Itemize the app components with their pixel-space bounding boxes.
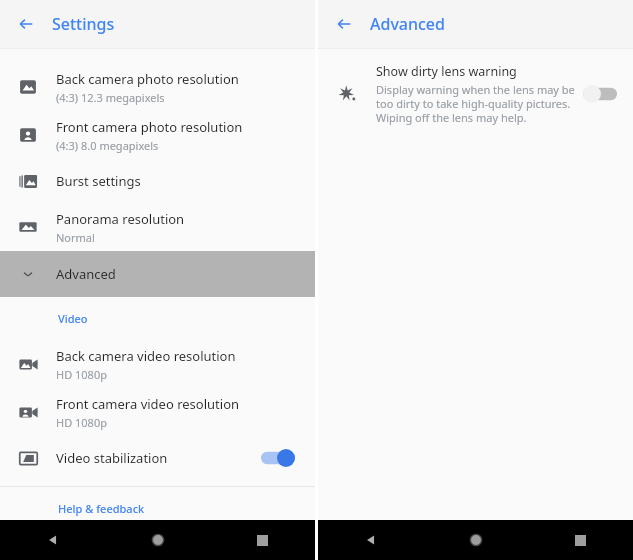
button[interactable]: Show dirty lens warning toggle [583,84,617,104]
staticText: Display warning when the lens may be too… [376,82,577,125]
button[interactable]: Show dirty lens warning [318,57,633,131]
button[interactable]: Advanced [0,251,315,297]
button[interactable]: Back [318,520,423,560]
staticText: Video [58,311,88,326]
button[interactable]: Burst settings [0,159,315,203]
button[interactable]: Front camera video resolution [0,388,315,436]
button[interactable]: Back [0,0,52,48]
staticText: Show dirty lens warning [376,63,517,80]
staticText: Back camera video resolution [56,347,236,365]
button[interactable]: Back camera photo resolution [0,63,315,111]
staticText: Video stabilization [56,449,261,467]
staticText: Back camera photo resolution [56,70,239,88]
button[interactable]: Video stabilization toggle [261,448,295,468]
button[interactable]: Video stabilization [0,436,315,480]
staticText: Settings [52,13,115,35]
staticText: Normal [56,230,95,245]
staticText: Front camera photo resolution [56,118,243,136]
staticText: Burst settings [56,172,141,190]
button[interactable]: Front camera photo resolution [0,111,315,159]
button[interactable]: Recent apps [210,520,315,560]
button[interactable]: Help & feedback [58,501,315,516]
button[interactable]: Panorama resolution [0,203,315,251]
button[interactable]: Back [318,0,370,48]
staticText: Front camera video resolution [56,395,240,413]
staticText: Advanced [370,13,445,35]
staticText: Panorama resolution [56,210,185,228]
button[interactable]: Recent apps [528,520,633,560]
staticText: HD 1080p [56,367,107,382]
staticText: (4:3) 12.3 megapixels [56,90,165,105]
button[interactable]: Home [105,520,210,560]
button[interactable]: Video [58,311,315,326]
staticText: Help & feedback [58,501,145,516]
staticText: Advanced [56,265,116,283]
staticText: HD 1080p [56,415,107,430]
staticText: (4:3) 8.0 megapixels [56,138,159,153]
button[interactable]: Back [0,520,105,560]
button[interactable]: Home [423,520,528,560]
button[interactable]: Back camera video resolution [0,340,315,388]
